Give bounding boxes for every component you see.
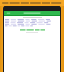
button[interactable]: Learn the meaning headline — [0, 0, 64, 6]
button[interactable]: Continue — [4, 29, 60, 31]
button[interactable]: App bar — [4, 11, 60, 16]
